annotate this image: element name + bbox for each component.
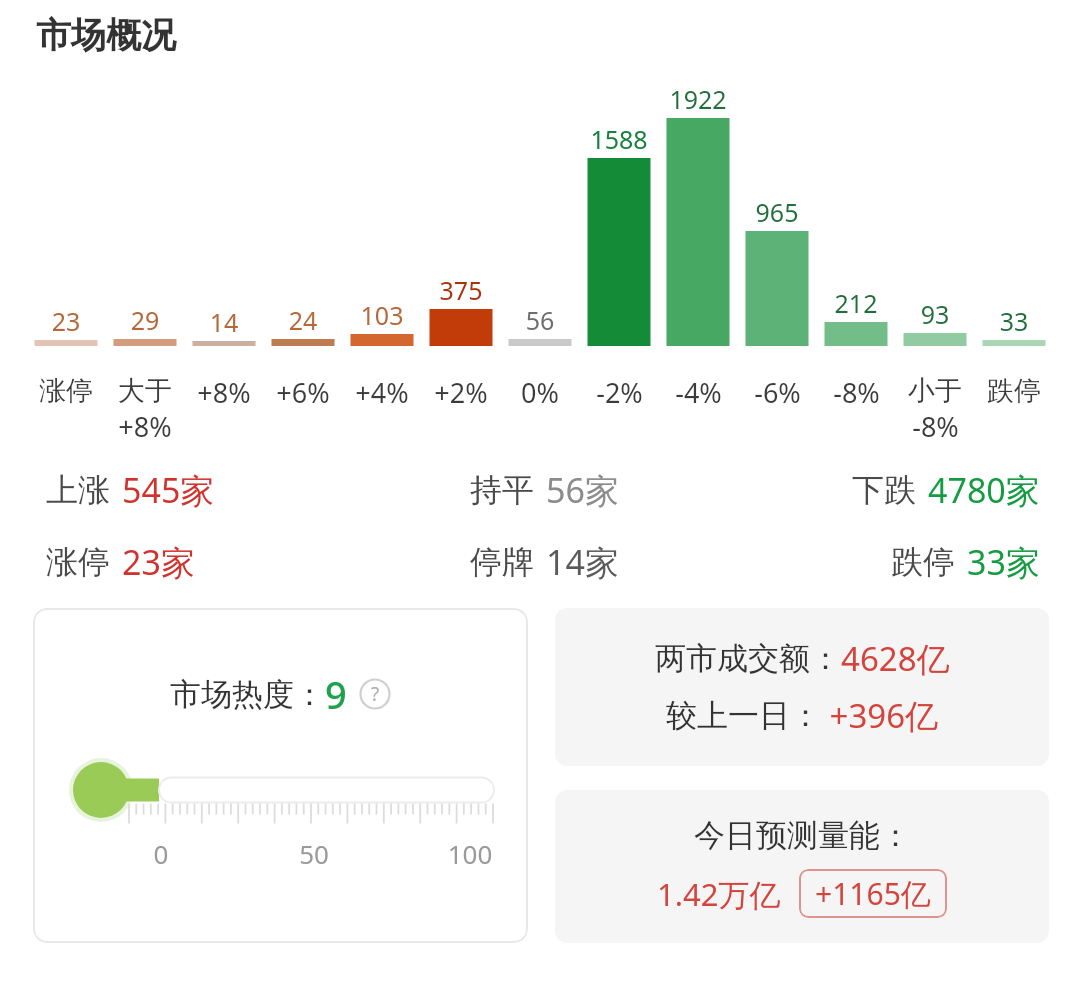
staticText: -8% <box>912 408 959 445</box>
staticText: 跌停 <box>987 374 1041 408</box>
staticText: 1588 <box>573 122 665 156</box>
staticText: 50 <box>291 836 337 871</box>
staticText: 停牌 <box>470 542 534 582</box>
staticText: -8% <box>833 374 880 411</box>
staticText: 23 <box>20 304 112 338</box>
staticText: 14 <box>178 305 270 339</box>
staticText: -2% <box>596 374 643 411</box>
staticText: 跌停 <box>891 542 955 582</box>
staticText: 今日预测量能： <box>694 816 911 855</box>
staticText: 4780家 <box>928 467 1040 513</box>
button[interactable]: 市场热度： <box>33 608 528 943</box>
staticText: 0 <box>145 836 177 871</box>
staticText: 持平 <box>470 470 534 510</box>
button[interactable]: 两市成交额： <box>555 608 1049 766</box>
staticText: ? <box>371 681 380 707</box>
staticText: 14家 <box>546 539 619 585</box>
staticText: -6% <box>754 374 801 411</box>
staticText: 103 <box>336 298 428 332</box>
staticText: 56家 <box>546 467 619 513</box>
staticText: 56 <box>494 303 586 337</box>
staticText: +6% <box>276 374 330 411</box>
staticText: 93 <box>889 297 981 331</box>
staticText: 33 <box>968 304 1060 338</box>
staticText: 24 <box>257 303 349 337</box>
staticText: 100 <box>441 836 499 871</box>
staticText: +8% <box>118 408 172 445</box>
staticText: 1.42万亿 <box>657 873 781 915</box>
staticText: 4628亿 <box>841 636 950 681</box>
staticText: 市场热度： <box>170 675 325 714</box>
staticText: +1165亿 <box>815 873 931 914</box>
staticText: +396亿 <box>821 693 939 738</box>
staticText: 29 <box>99 303 191 337</box>
button[interactable]: 今日预测量能： <box>555 790 1049 943</box>
staticText: 两市成交额： <box>655 639 841 678</box>
staticText: 23家 <box>122 539 195 585</box>
staticText: 9 <box>325 668 347 720</box>
staticText: 965 <box>731 195 823 229</box>
staticText: 1922 <box>652 82 744 116</box>
staticText: 涨停 <box>39 374 93 408</box>
staticText: 0% <box>521 374 559 411</box>
staticText: 涨停 <box>46 542 110 582</box>
staticText: +2% <box>434 374 488 411</box>
staticText: 大于 <box>118 374 172 408</box>
staticText: 较上一日： <box>666 696 821 735</box>
staticText: 下跌 <box>852 470 916 510</box>
staticText: 上涨 <box>46 470 110 510</box>
staticText: 545家 <box>122 467 215 513</box>
staticText: 小于 <box>908 374 962 408</box>
staticText: -4% <box>675 374 722 411</box>
staticText: 375 <box>415 273 507 307</box>
staticText: 212 <box>810 286 902 320</box>
staticText: 33家 <box>967 539 1040 585</box>
staticText: 市场概况 <box>36 13 176 57</box>
button[interactable]: 帮助 <box>359 678 391 710</box>
staticText: +8% <box>197 374 251 411</box>
staticText: +4% <box>355 374 409 411</box>
